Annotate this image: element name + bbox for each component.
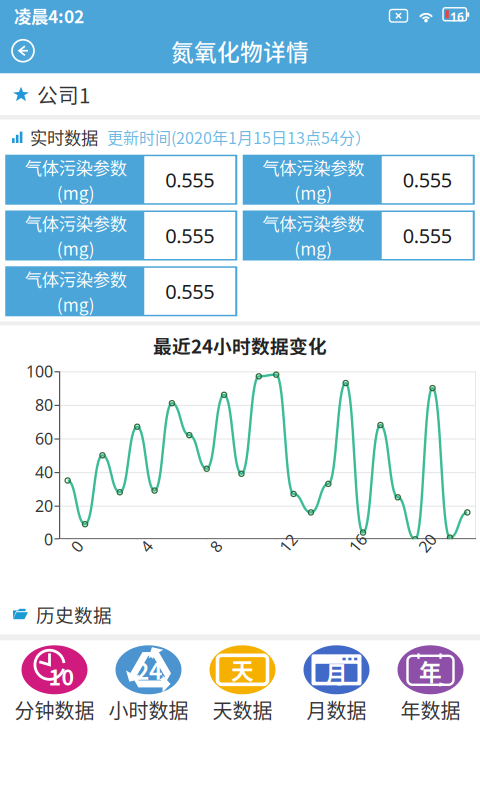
button[interactable]: 公司1 xyxy=(0,73,480,115)
staticText: 小时数据 xyxy=(108,695,188,724)
staticText: 天 xyxy=(231,653,254,686)
staticText: 0.555 xyxy=(165,278,214,305)
staticText: (mg) xyxy=(294,180,332,205)
staticText: 气体污染参数 xyxy=(262,210,364,235)
button[interactable]: 气体污染参数 xyxy=(243,210,475,260)
staticText: 气体污染参数 xyxy=(25,155,127,180)
staticText: 实时数据 xyxy=(30,124,98,150)
button[interactable]: 气体污染参数 xyxy=(5,155,237,205)
staticText: 历史数据 xyxy=(36,601,112,628)
button[interactable]: 24 xyxy=(101,645,195,724)
staticText: 月 xyxy=(325,656,348,689)
staticText: 月数据 xyxy=(306,695,366,724)
staticText: 12 xyxy=(277,542,295,563)
staticText: 氮氧化物详情 xyxy=(171,34,309,67)
staticText: 0.555 xyxy=(165,166,214,193)
button[interactable]: 月 xyxy=(289,645,383,724)
staticText: 气体污染参数 xyxy=(262,155,364,180)
staticText: 10 xyxy=(48,661,74,692)
staticText: (mg) xyxy=(57,180,95,205)
staticText: (mg) xyxy=(294,235,332,261)
staticText: (mg) xyxy=(57,291,95,316)
staticText: 100 xyxy=(26,361,53,382)
staticText: 0 xyxy=(69,542,78,563)
button[interactable]: 气体污染参数 xyxy=(243,155,475,205)
staticText: 0 xyxy=(44,529,53,550)
staticText: 气体污染参数 xyxy=(25,210,127,235)
staticText: 0.555 xyxy=(403,222,452,249)
staticText: (mg) xyxy=(57,235,95,261)
staticText: 年 xyxy=(419,654,442,687)
staticText: 年数据 xyxy=(400,695,460,724)
staticText: 20 xyxy=(416,542,434,563)
staticText: 公司1 xyxy=(37,79,90,109)
staticText: 气体污染参数 xyxy=(25,266,127,291)
staticText: 24 xyxy=(136,653,162,686)
staticText: 40 xyxy=(35,461,53,483)
staticText: 天数据 xyxy=(212,695,272,724)
staticText: 80 xyxy=(35,394,53,415)
staticText: 最近24小时数据变化 xyxy=(153,332,327,359)
button[interactable]: 气体污染参数 xyxy=(5,266,237,316)
staticText: 60 xyxy=(35,428,53,449)
button[interactable]: 10 xyxy=(7,645,101,724)
staticText: 4 xyxy=(138,542,147,563)
staticText: 16 xyxy=(450,9,464,25)
staticText: 16 xyxy=(347,542,365,563)
button[interactable]: Back xyxy=(0,31,46,71)
staticText: 20 xyxy=(35,495,53,516)
staticText: 8 xyxy=(208,542,217,563)
staticText: 更新时间(2020年1月15日13点54分） xyxy=(107,125,371,149)
button[interactable]: 气体污染参数 xyxy=(5,210,237,260)
button[interactable]: 天 xyxy=(195,645,289,724)
staticText: 凌晨4:02 xyxy=(14,3,84,28)
staticText: 0.555 xyxy=(403,166,452,193)
button[interactable]: 年 xyxy=(383,645,477,724)
staticText: 分钟数据 xyxy=(14,695,94,724)
staticText: 0.555 xyxy=(165,222,214,249)
